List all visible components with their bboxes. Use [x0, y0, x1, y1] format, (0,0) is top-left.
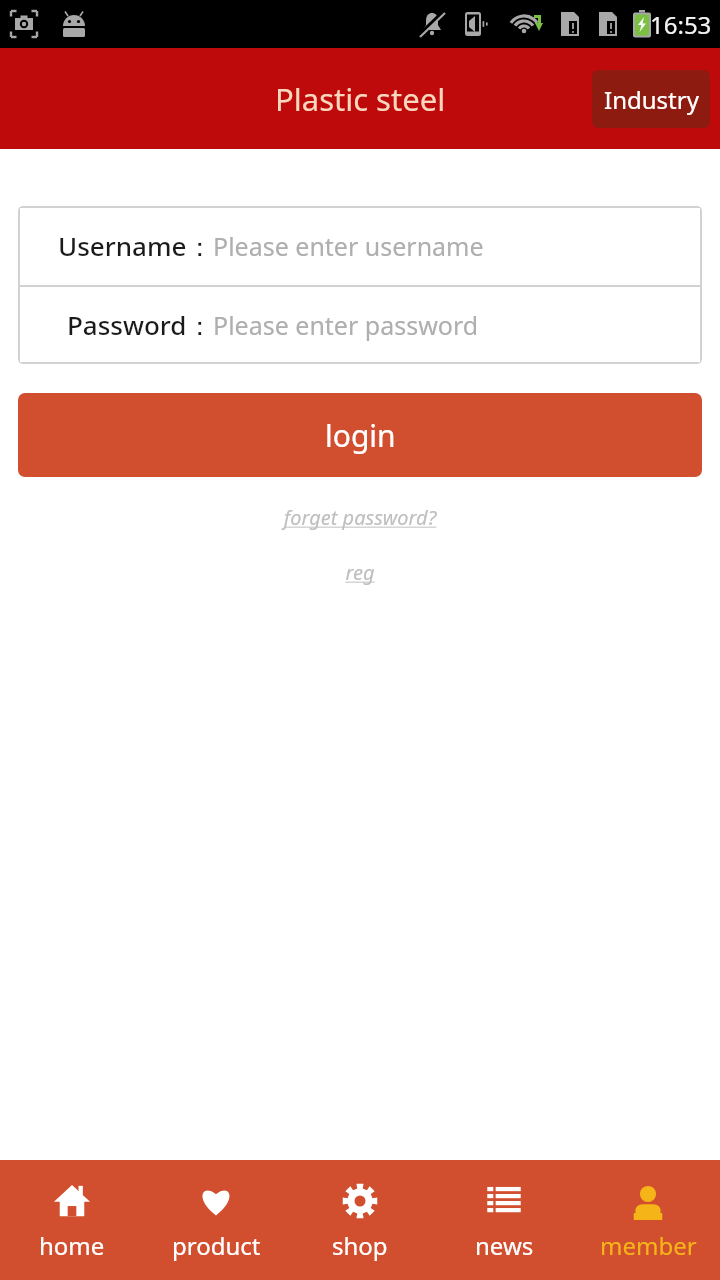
staticText: product — [172, 1229, 261, 1262]
button[interactable]: member — [576, 1160, 720, 1280]
staticText: Username： — [58, 228, 213, 264]
staticText: reg — [345, 559, 375, 586]
staticText: login — [325, 415, 396, 456]
staticText: Industry — [604, 83, 699, 116]
staticText: Please enter password — [213, 308, 479, 342]
staticText: Plastic steel — [275, 78, 446, 120]
staticText: home — [39, 1229, 105, 1262]
staticText: Please enter username — [213, 229, 484, 263]
button[interactable]: reg — [345, 559, 375, 586]
staticText: 16:53 — [650, 8, 712, 41]
button[interactable]: forget password? — [281, 504, 439, 531]
button[interactable]: Username： — [18, 206, 702, 285]
staticText: member — [600, 1229, 697, 1262]
staticText: Password： — [67, 307, 213, 343]
button[interactable]: news — [432, 1160, 576, 1280]
button[interactable]: home — [0, 1160, 144, 1280]
button[interactable]: login — [18, 393, 702, 477]
staticText: news — [475, 1229, 534, 1262]
button[interactable]: product — [144, 1160, 288, 1280]
button[interactable]: shop — [288, 1160, 432, 1280]
button[interactable]: Password： — [18, 285, 702, 364]
staticText: shop — [332, 1229, 388, 1262]
staticText: forget password? — [281, 504, 439, 531]
button[interactable]: Industry — [592, 70, 710, 128]
